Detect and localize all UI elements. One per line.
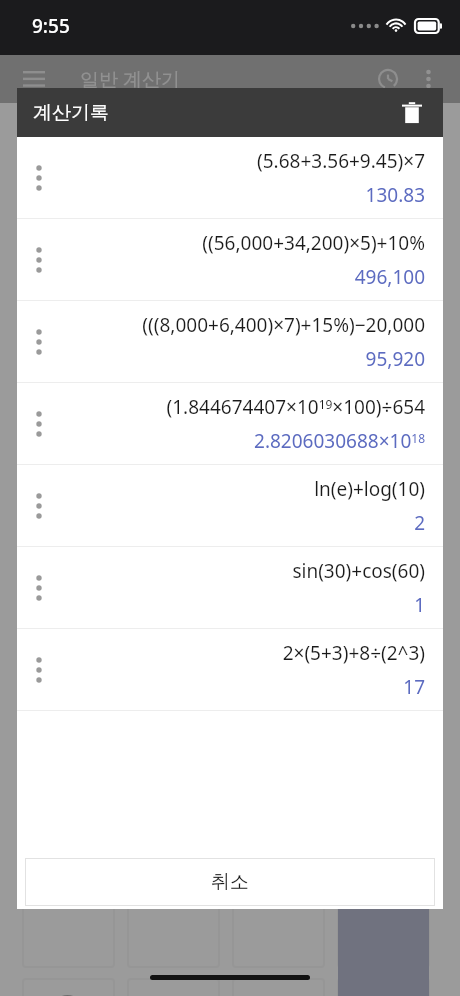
other: Item options (36, 657, 42, 683)
other: Item options (36, 575, 42, 601)
staticText: 9:55 (32, 13, 70, 39)
other: Item options (36, 329, 42, 355)
staticText: 취소 (211, 870, 249, 894)
staticText: 일반 계산기 (80, 66, 180, 92)
button[interactable]: Item options (17, 301, 443, 383)
other: Item options (36, 411, 42, 437)
button[interactable]: More options (408, 59, 448, 99)
staticText: 17 (403, 674, 425, 700)
button[interactable]: Menu (16, 61, 52, 97)
staticText: 496,100 (354, 264, 425, 290)
staticText: 2.8206030688×1018 (254, 428, 425, 454)
staticText: 1 (414, 592, 425, 618)
other: Item options (36, 165, 42, 191)
staticText: (1.844674407×1019×100)÷654 (166, 394, 425, 420)
staticText: 계산기록 (33, 101, 109, 125)
button[interactable]: 취소 (25, 858, 435, 906)
button[interactable]: Item options (17, 465, 443, 547)
button[interactable]: Item options (17, 219, 443, 301)
button[interactable]: History (368, 59, 408, 99)
other: Item options (36, 493, 42, 519)
staticText: 130.83 (365, 182, 425, 208)
staticText: (((8,000+6,400)×7)+15%)−20,000 (142, 312, 425, 338)
button[interactable]: Clear history (395, 96, 429, 130)
staticText: ((56,000+34,200)×5)+10% (202, 230, 425, 256)
staticText: ln(e)+log(10) (314, 476, 425, 502)
button[interactable]: Item options (17, 383, 443, 465)
staticText: (5.68+3.56+9.45)×7 (257, 148, 425, 174)
staticText: 2 (414, 510, 425, 536)
staticText: 95,920 (365, 346, 425, 372)
other: Item options (36, 247, 42, 273)
button[interactable]: Item options (17, 547, 443, 629)
staticText: sin(30)+cos(60) (292, 558, 425, 584)
staticText: 2×(5+3)+8÷(2^3) (282, 640, 425, 666)
button[interactable]: Item options (17, 629, 443, 711)
button[interactable]: Item options (17, 137, 443, 219)
